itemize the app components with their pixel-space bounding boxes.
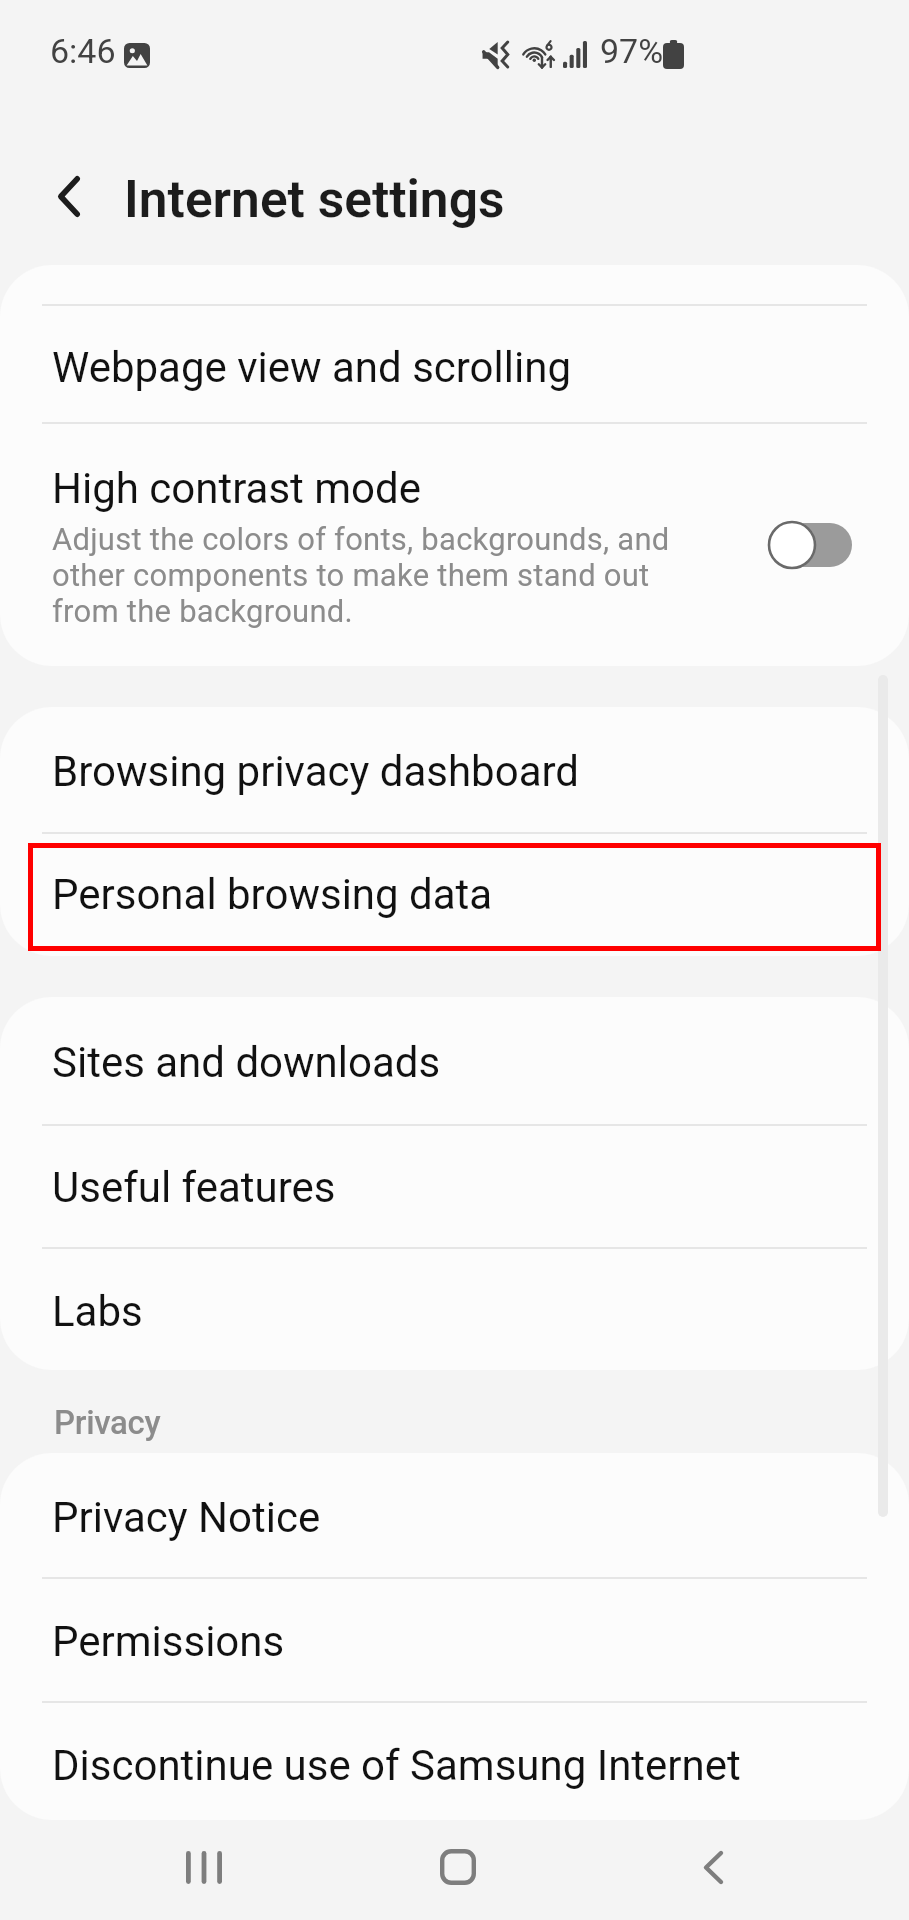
button[interactable]: Personal browsing data (0, 833, 909, 955)
button[interactable]: Permissions (0, 1580, 909, 1702)
staticText: Labs (52, 1287, 143, 1336)
staticText: Privacy (54, 1403, 161, 1442)
staticText: Internet settings (124, 169, 505, 229)
button[interactable]: Back (663, 1817, 763, 1917)
staticText: Useful features (52, 1163, 336, 1212)
button[interactable]: Sites and downloads (0, 1001, 909, 1123)
staticText: Personal browsing data (52, 870, 493, 919)
staticText: Browsing privacy dashboard (52, 747, 580, 796)
button[interactable]: Webpage view and scrolling (0, 306, 909, 428)
button[interactable]: Useful features (0, 1126, 909, 1248)
button[interactable]: Browsing privacy dashboard (0, 710, 909, 832)
button[interactable]: High contrast mode (755, 505, 867, 585)
staticText: from the background. (52, 593, 353, 629)
staticText: High contrast mode (52, 464, 422, 513)
staticText: other components to make them stand out (52, 557, 650, 593)
button[interactable]: Home (408, 1817, 508, 1917)
button[interactable]: Labs (0, 1250, 909, 1370)
staticText: Discontinue use of Samsung Internet (52, 1741, 741, 1790)
button[interactable]: Navigate up (24, 151, 114, 241)
staticText: Webpage view and scrolling (52, 343, 571, 392)
staticText: Adjust the colors of fonts, backgrounds,… (52, 521, 670, 557)
staticText: 97% (600, 31, 664, 71)
staticText: Permissions (52, 1617, 285, 1666)
button[interactable] (0, 424, 909, 666)
staticText: Privacy Notice (52, 1493, 321, 1542)
button[interactable]: Discontinue use of Samsung Internet (0, 1704, 909, 1820)
button[interactable]: Privacy Notice (0, 1456, 909, 1578)
button[interactable]: Recent apps (154, 1817, 254, 1917)
staticText: Sites and downloads (52, 1038, 441, 1087)
staticText: 6:46 (50, 31, 116, 71)
